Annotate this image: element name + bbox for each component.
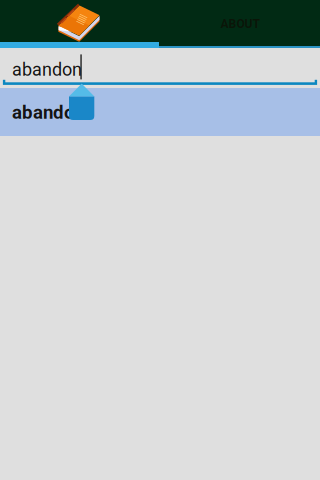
staticText: ABOUT	[220, 17, 259, 31]
staticText: abandon	[12, 101, 85, 123]
staticText: abandon	[12, 59, 82, 80]
button[interactable]: abandon	[0, 88, 320, 136]
button[interactable]: Dictionary	[0, 0, 160, 48]
